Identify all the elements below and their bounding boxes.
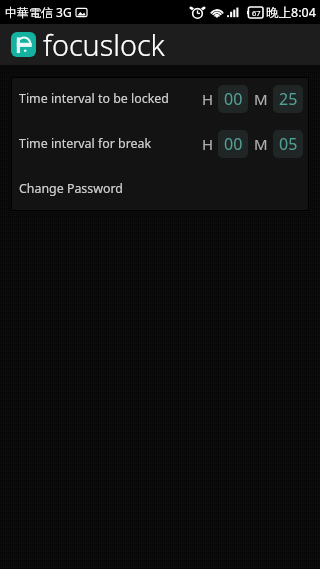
- button[interactable]: 05: [273, 130, 303, 158]
- staticText: 67: [252, 8, 261, 18]
- button[interactable]: Time interval to be locked: [11, 77, 309, 121]
- staticText: H: [202, 89, 214, 109]
- staticText: 晚上8:04: [266, 4, 316, 21]
- staticText: Time interval for break: [19, 135, 152, 152]
- button[interactable]: Change Password: [11, 166, 309, 210]
- button[interactable]: 25: [273, 85, 303, 113]
- button[interactable]: focuslock logo: [11, 32, 36, 57]
- button[interactable]: 00: [218, 85, 248, 113]
- staticText: Time interval to be locked: [19, 90, 169, 107]
- staticText: M: [254, 134, 268, 154]
- staticText: H: [202, 134, 214, 154]
- staticText: 中華電信 3G: [5, 4, 72, 20]
- button[interactable]: Time interval for break: [11, 121, 309, 166]
- staticText: focuslock: [43, 25, 165, 64]
- staticText: Change Password: [19, 180, 123, 197]
- staticText: 05: [279, 133, 298, 155]
- staticText: 00: [224, 133, 243, 155]
- staticText: 25: [279, 88, 298, 110]
- staticText: 00: [224, 88, 243, 110]
- staticText: M: [254, 89, 268, 109]
- button[interactable]: 00: [218, 130, 248, 158]
